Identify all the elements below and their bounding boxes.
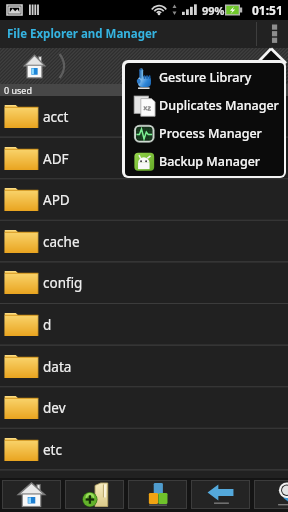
staticText: Process Manager xyxy=(159,125,262,142)
button[interactable]: Applications xyxy=(128,480,187,509)
button[interactable]: config xyxy=(0,262,288,304)
button[interactable]: d xyxy=(0,304,288,346)
button[interactable]: Home xyxy=(22,48,46,84)
button[interactable]: acct xyxy=(0,96,288,138)
button[interactable]: etc xyxy=(0,429,288,471)
staticText: d xyxy=(43,316,52,334)
staticText: dev xyxy=(43,399,66,417)
staticText: config xyxy=(43,274,83,292)
staticText: 99% xyxy=(202,3,225,18)
button[interactable]: Duplicates Manager xyxy=(125,91,284,119)
staticText: Duplicates Manager xyxy=(159,97,279,114)
button[interactable]: Home xyxy=(2,480,61,509)
staticText: etc xyxy=(43,441,62,459)
button[interactable]: APD xyxy=(0,179,288,221)
staticText: cache xyxy=(43,233,80,251)
staticText: Backup Manager xyxy=(159,153,261,170)
staticText: Gesture Library xyxy=(159,69,252,86)
button[interactable]: cache xyxy=(0,221,288,263)
button[interactable]: Gesture Library xyxy=(125,63,284,91)
button[interactable]: dev xyxy=(0,387,288,429)
button[interactable]: Backup Manager xyxy=(125,147,284,175)
staticText: 0 used xyxy=(4,84,32,96)
button[interactable]: Process Manager xyxy=(125,119,284,147)
staticText: 01:51 xyxy=(252,2,283,18)
button[interactable]: data xyxy=(0,346,288,388)
button[interactable]: Back xyxy=(191,480,250,509)
staticText: ADF xyxy=(43,150,69,168)
staticText: File Explorer and Manager xyxy=(7,26,157,42)
button[interactable]: Search xyxy=(254,480,288,509)
staticText: data xyxy=(43,358,72,376)
button[interactable]: More options xyxy=(256,20,288,48)
staticText: acct xyxy=(43,108,69,126)
button[interactable]: ADF xyxy=(0,138,288,180)
staticText: APD xyxy=(43,191,70,209)
button[interactable]: New folder xyxy=(65,480,124,509)
